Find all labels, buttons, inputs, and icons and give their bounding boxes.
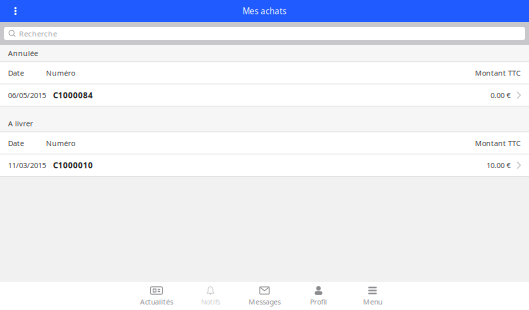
staticText: 06/05/2015	[8, 90, 46, 100]
staticText: Date	[8, 68, 24, 78]
staticText: Montant TTC	[475, 68, 521, 78]
staticText: Profil	[310, 297, 327, 306]
staticText: 11/03/2015	[8, 160, 46, 170]
button[interactable]: Profil	[291, 282, 345, 310]
staticText: 10.00 €	[486, 160, 510, 170]
staticText: 0.00 €	[490, 90, 510, 100]
button[interactable]: Recherche	[4, 27, 525, 40]
button[interactable]: Menu	[345, 282, 399, 310]
button[interactable]: Notifs	[183, 282, 237, 310]
staticText: Numéro	[46, 138, 75, 148]
staticText: Menu	[363, 297, 382, 306]
button[interactable]: More options	[0, 0, 31, 22]
button[interactable]: Messages	[237, 282, 291, 310]
staticText: A livrer	[8, 118, 33, 128]
staticText: Montant TTC	[475, 138, 521, 148]
staticText: C1000010	[53, 160, 93, 171]
staticText: Mes achats	[242, 5, 286, 17]
staticText: Annulée	[8, 48, 38, 58]
button[interactable]: 06/05/2015	[0, 84, 529, 106]
button[interactable]: 11/03/2015	[0, 154, 529, 176]
staticText: Notifs	[201, 297, 220, 306]
staticText: Recherche	[19, 28, 57, 39]
staticText: Messages	[248, 297, 280, 306]
staticText: Date	[8, 138, 24, 148]
staticText: Actualités	[140, 297, 173, 306]
staticText: Numéro	[46, 68, 75, 78]
staticText: C1000084	[53, 90, 93, 101]
button[interactable]: Actualités	[129, 282, 183, 310]
